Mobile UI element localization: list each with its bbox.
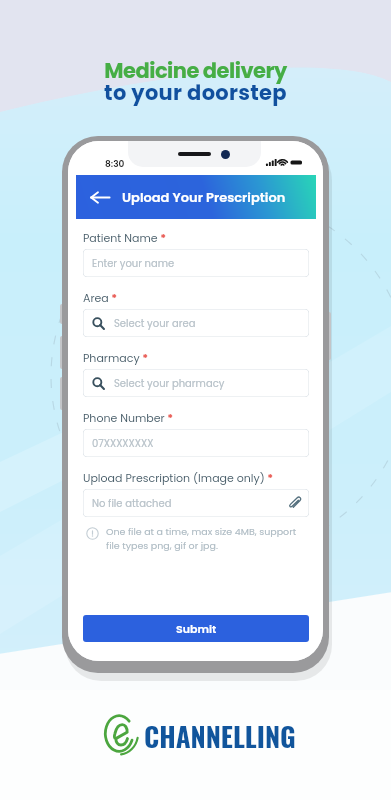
staticText: Enter your name [92, 256, 175, 270]
button[interactable]: Back [76, 175, 316, 219]
staticText: Area [83, 290, 109, 305]
staticText: Select your pharmacy [114, 376, 225, 390]
staticText: * [109, 290, 118, 305]
staticText: Select your area [114, 316, 196, 330]
staticText: One file at a time, max size 4MB, suppor… [106, 525, 297, 553]
staticText: Medicine delivery [104, 56, 287, 85]
staticText: * [158, 230, 167, 245]
staticText: * [265, 470, 274, 485]
staticText: 07XXXXXXXX [92, 436, 154, 450]
staticText: CHANNELLING [144, 716, 296, 756]
staticText: 8:30 [105, 158, 125, 171]
staticText: Upload Prescription (Image only) [83, 470, 265, 485]
staticText: Submit [176, 621, 217, 636]
button[interactable]: Enter your name [83, 249, 309, 277]
staticText: No file attached [92, 496, 172, 510]
button[interactable]: Select your pharmacy [83, 369, 309, 397]
staticText: Patient Name [83, 230, 158, 245]
staticText: Upload Your Prescription [122, 188, 286, 206]
staticText: Pharmacy [83, 350, 140, 365]
staticText: Phone Number [83, 410, 165, 425]
staticText: * [140, 350, 149, 365]
button[interactable]: Back [89, 186, 111, 208]
staticText: to your doorstep [104, 78, 287, 107]
button[interactable]: 07XXXXXXXX [83, 429, 309, 457]
button[interactable]: Submit [83, 615, 309, 642]
button[interactable]: No file attached [83, 489, 309, 517]
staticText: * [165, 410, 174, 425]
button[interactable]: Select your area [83, 309, 309, 337]
